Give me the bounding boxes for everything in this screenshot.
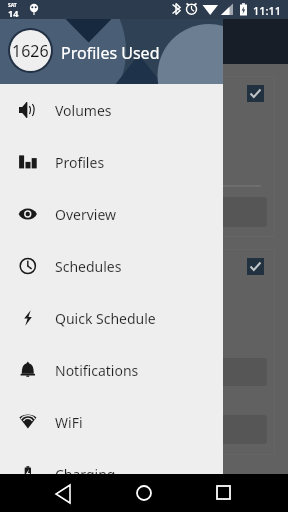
button[interactable]: Quick Schedule: [0, 292, 223, 344]
staticText: WiFi: [55, 413, 83, 432]
button[interactable]: Toggle: [247, 258, 264, 275]
staticText: Profiles: [55, 153, 105, 172]
staticText: Charging: [55, 465, 116, 484]
button[interactable]: Overview: [0, 188, 223, 240]
button[interactable]: Schedules: [0, 240, 223, 292]
button[interactable]: Home: [130, 474, 158, 512]
staticText: Schedules: [55, 257, 122, 276]
staticText: Notifications: [55, 361, 139, 380]
button[interactable]: Profiles: [0, 136, 223, 188]
staticText: Volumes: [55, 101, 112, 120]
staticText: 11:11: [253, 3, 282, 18]
button[interactable]: WiFi: [0, 396, 223, 448]
button[interactable]: Back: [50, 474, 78, 512]
staticText: 14: [8, 7, 19, 19]
button[interactable]: Profiles used: [10, 30, 51, 71]
staticText: Overview: [55, 205, 117, 224]
button[interactable]: Charging: [0, 448, 223, 500]
staticText: Quick Schedule: [55, 309, 156, 328]
button[interactable]: Notifications: [0, 344, 223, 396]
button[interactable]: Volumes: [0, 84, 223, 136]
button[interactable]: Toggle: [14, 76, 275, 237]
staticText: SAT: [8, 2, 17, 9]
button[interactable]: Toggle: [14, 249, 275, 455]
button[interactable]: Recents: [210, 474, 238, 512]
button[interactable]: Toggle: [247, 85, 264, 102]
staticText: 1626: [12, 40, 49, 62]
staticText: Profiles Used: [61, 42, 160, 64]
